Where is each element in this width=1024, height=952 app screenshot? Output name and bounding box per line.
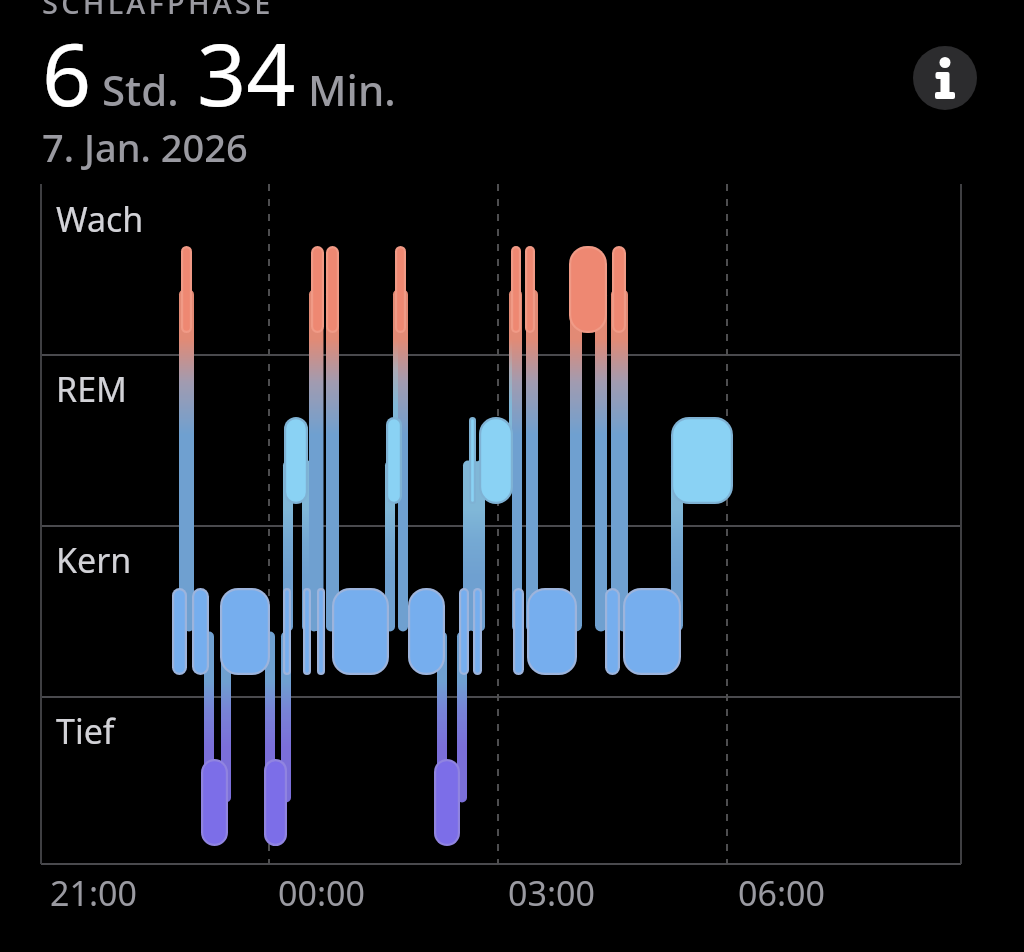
staticText: 06:00	[738, 870, 825, 916]
staticText: SCHLAFPHASE	[42, 0, 274, 22]
staticText: 7. Jan. 2026	[42, 121, 248, 173]
staticText: Min.	[308, 61, 396, 118]
staticText: Kern	[56, 537, 132, 583]
staticText: Wach	[56, 196, 144, 242]
staticText: 00:00	[278, 870, 365, 916]
staticText: 03:00	[508, 870, 595, 916]
staticText: Std.	[102, 61, 179, 118]
staticText: REM	[56, 366, 127, 412]
staticText: 6	[42, 14, 92, 131]
staticText: 21:00	[50, 870, 137, 916]
staticText: Tief	[56, 708, 115, 754]
staticText: 34	[197, 14, 296, 131]
button[interactable]	[913, 46, 977, 110]
